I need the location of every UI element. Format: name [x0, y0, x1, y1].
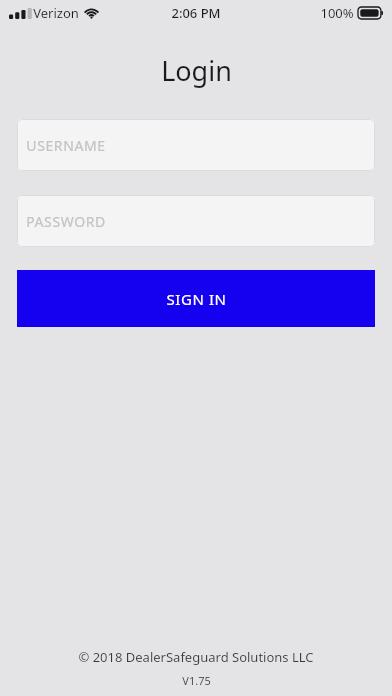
staticText: Login [161, 52, 232, 89]
staticText: 2:06 PM [171, 4, 221, 22]
button[interactable]: SIGN IN [17, 270, 375, 327]
button[interactable]: PASSWORD [17, 195, 375, 247]
staticText: 100% [320, 4, 354, 22]
staticText: V1.75 [182, 673, 211, 688]
staticText: © 2018 DealerSafeguard Solutions LLC [78, 648, 314, 666]
staticText: USERNAME [26, 136, 106, 155]
staticText: PASSWORD [26, 212, 106, 231]
staticText: Verizon [33, 4, 79, 22]
button[interactable]: USERNAME [17, 119, 375, 171]
staticText: SIGN IN [166, 289, 227, 309]
